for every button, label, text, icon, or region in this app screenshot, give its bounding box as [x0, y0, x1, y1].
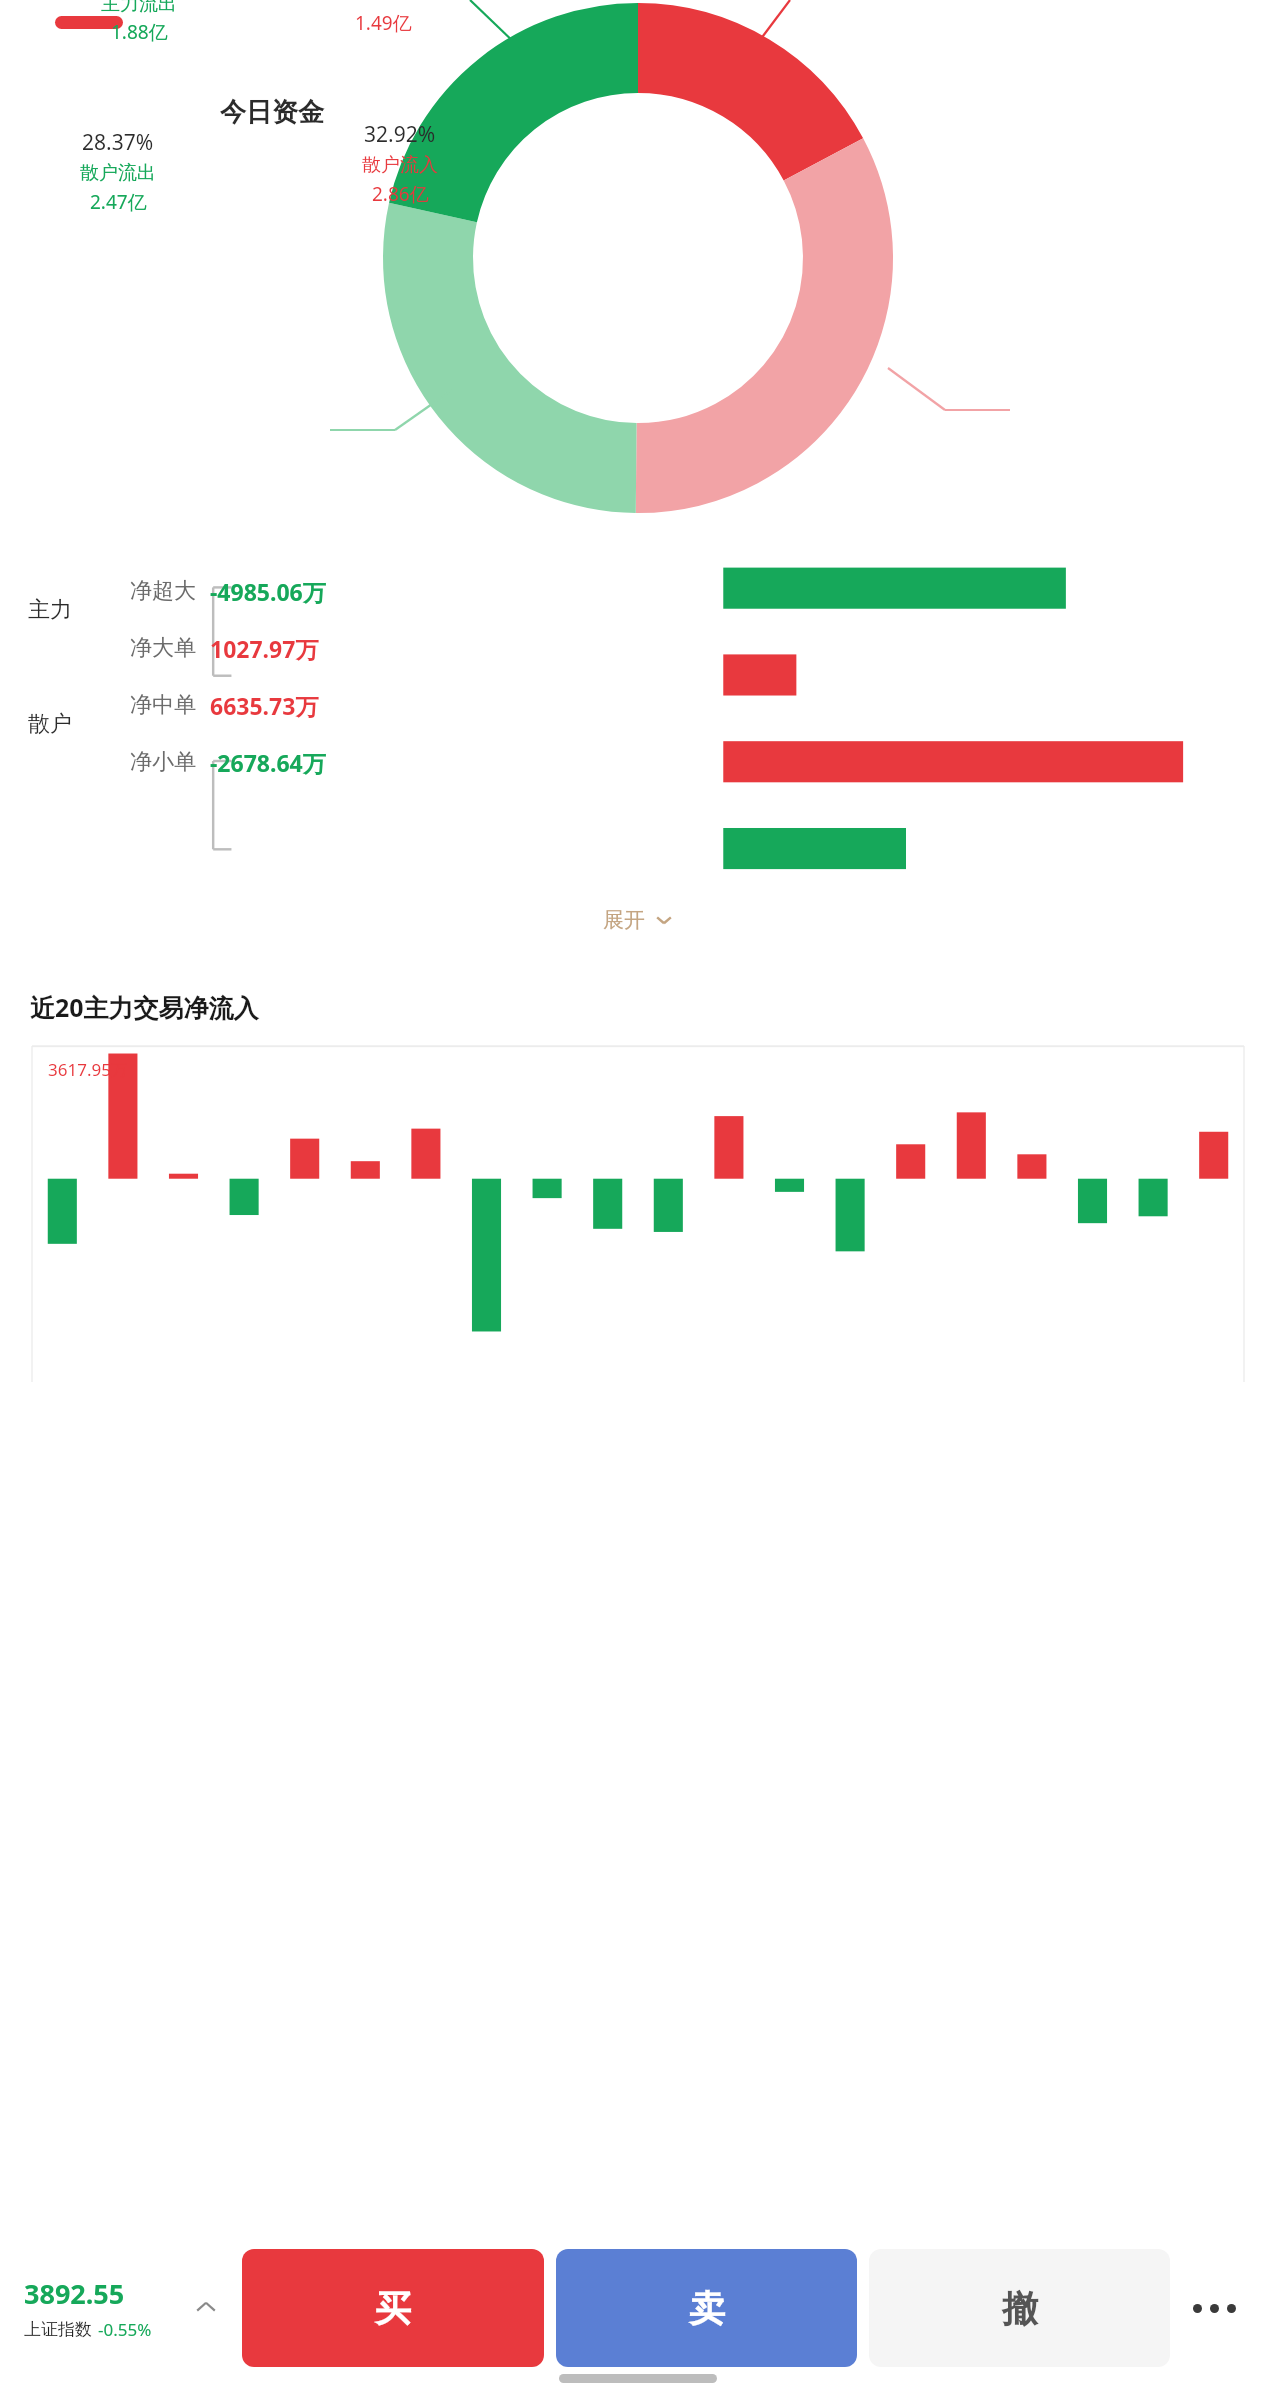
- staticText: 3892.55: [24, 2275, 125, 2312]
- staticText: 32.92%: [364, 120, 436, 149]
- button[interactable]: 净小单: [92, 739, 326, 785]
- staticText: 1027.97万: [210, 633, 319, 664]
- button[interactable]: 撤: [869, 2249, 1170, 2367]
- button[interactable]: 展开: [585, 899, 691, 941]
- staticText: -2678.64万: [210, 747, 326, 778]
- staticText: 主力: [28, 596, 72, 624]
- staticText: 展开: [603, 907, 645, 933]
- staticText: 净小单: [130, 748, 196, 776]
- button[interactable]: Expand: [184, 2286, 228, 2330]
- staticText: 散户: [28, 710, 72, 738]
- staticText: 撤: [1002, 2286, 1038, 2331]
- button[interactable]: 净超大: [92, 568, 326, 614]
- staticText: 28.37%: [82, 128, 154, 157]
- staticText: 2.47亿: [90, 189, 147, 215]
- button[interactable]: 净中单: [92, 682, 319, 728]
- staticText: 买: [375, 2286, 411, 2331]
- staticText: -0.55%: [98, 2318, 152, 2341]
- staticText: 净超大: [130, 577, 196, 605]
- staticText: 卖: [689, 2286, 725, 2331]
- staticText: 6635.73万: [210, 690, 319, 721]
- button[interactable]: 买: [242, 2249, 544, 2367]
- button[interactable]: 净大单: [92, 625, 319, 671]
- button[interactable]: 卖: [556, 2249, 857, 2367]
- staticText: 3617.95万: [48, 1058, 128, 1081]
- staticText: 近20主力交易净流入: [30, 990, 259, 1024]
- staticText: 上证指数: [24, 2319, 92, 2340]
- staticText: 1.49亿: [355, 10, 412, 36]
- staticText: 2.86亿: [372, 181, 429, 207]
- staticText: 散户流出: [80, 161, 156, 185]
- staticText: 净大单: [130, 634, 196, 662]
- staticText: 主力流出: [101, 0, 177, 16]
- staticText: 净中单: [130, 691, 196, 719]
- staticText: 散户流入: [362, 153, 438, 177]
- staticText: 今日资金: [172, 96, 372, 129]
- staticText: 1.88亿: [111, 19, 168, 45]
- button[interactable]: More options: [1170, 2219, 1258, 2397]
- staticText: -4985.06万: [210, 576, 326, 607]
